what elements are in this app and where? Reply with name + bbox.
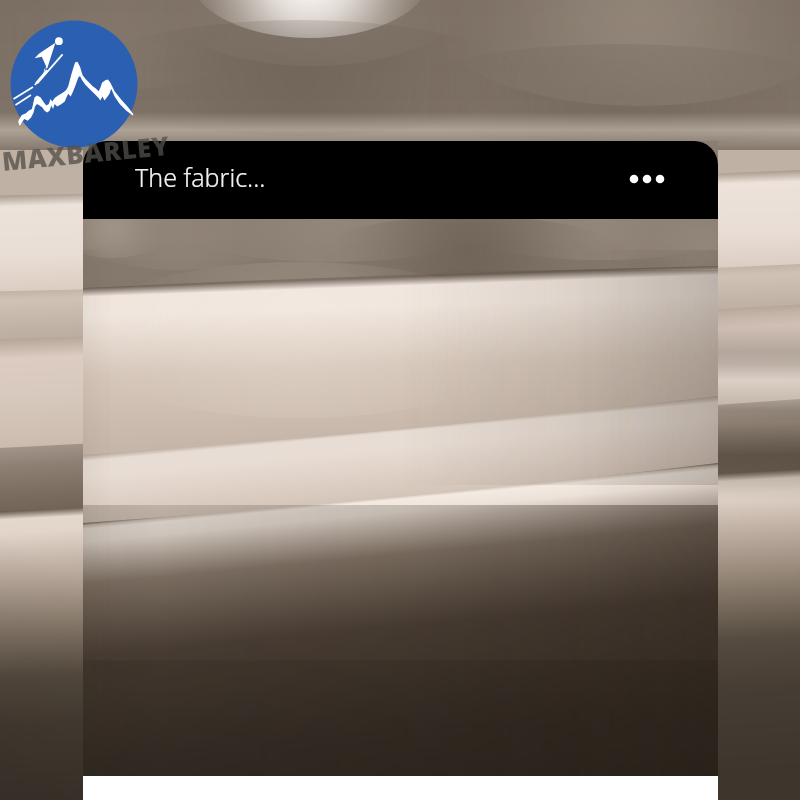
button[interactable]: The fabric... [135, 160, 266, 194]
staticText: MAXBARLEY [0, 127, 171, 178]
